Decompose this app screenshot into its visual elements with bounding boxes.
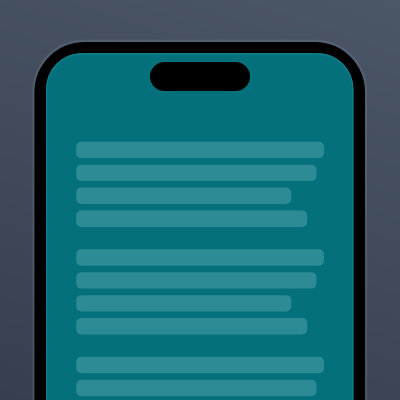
button[interactable]: Content row 7 — [76, 295, 291, 311]
button[interactable]: Content row 5 — [76, 249, 324, 265]
button[interactable]: Content row 6 — [76, 272, 316, 288]
button[interactable]: Dynamic Island — [150, 62, 250, 91]
